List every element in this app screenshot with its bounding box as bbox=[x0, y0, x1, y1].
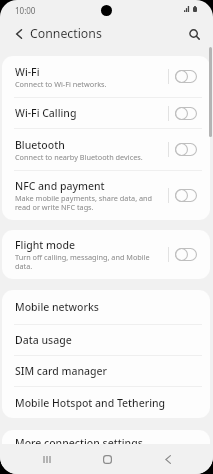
button[interactable]: Mobile networks bbox=[2, 290, 210, 324]
staticText: 10:00 bbox=[15, 5, 36, 16]
button[interactable]: Recents bbox=[32, 444, 62, 474]
staticText: Connect to nearby Bluetooth devices. bbox=[15, 152, 143, 162]
button[interactable]: Wi-Fi Calling switch bbox=[175, 107, 197, 120]
button[interactable]: Flight mode switch bbox=[175, 248, 197, 261]
staticText: SIM card manager bbox=[15, 364, 108, 378]
staticText: Bluetooth bbox=[15, 138, 65, 152]
button[interactable]: More connection settings bbox=[2, 430, 210, 461]
staticText: Data usage bbox=[15, 333, 72, 347]
button[interactable]: Bluetooth bbox=[2, 129, 210, 170]
button[interactable]: Back bbox=[153, 444, 183, 474]
button[interactable]: Wi-Fi bbox=[2, 56, 210, 97]
button[interactable]: Data usage bbox=[2, 325, 210, 355]
button[interactable]: Wi-Fi Calling bbox=[2, 98, 210, 128]
button[interactable]: Mobile Hotspot and Tethering bbox=[2, 387, 210, 418]
button[interactable]: Search bbox=[183, 20, 206, 48]
staticText: Wi-Fi Calling bbox=[15, 106, 77, 120]
staticText: Flight mode bbox=[15, 238, 75, 252]
staticText: Wi-Fi bbox=[15, 65, 40, 79]
button[interactable]: Bluetooth switch bbox=[175, 143, 197, 156]
button[interactable]: Flight mode bbox=[2, 230, 210, 279]
button[interactable]: SIM card manager bbox=[2, 356, 210, 386]
button[interactable]: NFC and payment switch bbox=[175, 189, 197, 202]
staticText: Connections bbox=[30, 25, 102, 42]
staticText: Turn off calling, messaging, and Mobile … bbox=[15, 252, 150, 271]
button[interactable]: NFC and payment bbox=[2, 171, 210, 220]
staticText: NFC and payment bbox=[15, 179, 105, 193]
button[interactable]: Back bbox=[7, 20, 31, 48]
staticText: Mobile Hotspot and Tethering bbox=[15, 396, 166, 410]
staticText: Connect to Wi-Fi networks. bbox=[15, 79, 107, 89]
staticText: Make mobile payments, share data, and re… bbox=[15, 193, 153, 212]
button[interactable]: Wi-Fi switch bbox=[175, 70, 197, 83]
button[interactable]: Home bbox=[92, 444, 122, 474]
staticText: Mobile networks bbox=[15, 300, 99, 314]
staticText: More connection settings bbox=[15, 436, 143, 450]
